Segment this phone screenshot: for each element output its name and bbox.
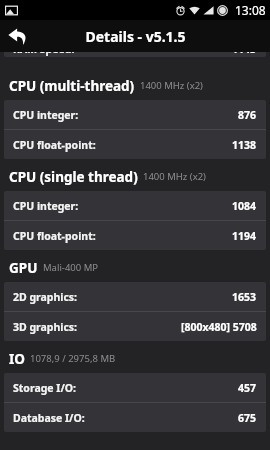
button[interactable]: CPU integer: <box>4 100 266 129</box>
staticText: 1194 <box>232 229 257 243</box>
staticText: Storage I/O: <box>13 381 77 395</box>
staticText: CPU (multi-thread) <box>9 77 135 95</box>
button[interactable]: 3D graphics: <box>4 312 266 341</box>
staticText: 1078,9 / 2975,8 MB <box>30 352 116 365</box>
button[interactable]: RAM Speed: <box>4 52 266 57</box>
staticText: 457 <box>238 381 257 395</box>
button[interactable]: 2D graphics: <box>4 282 266 311</box>
button[interactable]: CPU integer: <box>4 191 266 220</box>
staticText: 1400 MHz (x2) <box>143 170 206 183</box>
staticText: CPU float-point: <box>13 138 96 152</box>
staticText: 2D graphics: <box>13 290 78 304</box>
staticText: CPU (single thread) <box>9 168 138 186</box>
staticText: CPU integer: <box>13 199 79 213</box>
staticText: 876 <box>238 108 257 122</box>
button[interactable]: Database I/O: <box>4 403 266 432</box>
staticText: Database I/O: <box>13 411 85 425</box>
staticText: CPU float-point: <box>13 229 96 243</box>
staticText: [800x480] 5708 <box>181 320 257 334</box>
button[interactable]: CPU float-point: <box>4 130 266 159</box>
staticText: Mali-400 MP <box>43 261 99 274</box>
button[interactable]: Storage I/O: <box>4 373 266 402</box>
staticText: 1400 MHz (x2) <box>140 79 203 92</box>
staticText: 1084 <box>232 199 257 213</box>
staticText: 1653 <box>232 290 257 304</box>
staticText: GPU <box>9 259 38 277</box>
staticText: 3D graphics: <box>13 320 78 334</box>
staticText: CPU integer: <box>13 108 79 122</box>
staticText: 1138 <box>232 138 257 152</box>
staticText: 1143 <box>232 52 257 56</box>
button[interactable]: CPU float-point: <box>4 221 266 250</box>
staticText: 13:08 <box>235 2 266 18</box>
staticText: Details - v5.1.5 <box>85 27 186 46</box>
button[interactable]: Back <box>0 20 34 52</box>
staticText: 675 <box>238 411 257 425</box>
staticText: RAM Speed: <box>13 52 75 56</box>
staticText: IO <box>9 350 25 368</box>
